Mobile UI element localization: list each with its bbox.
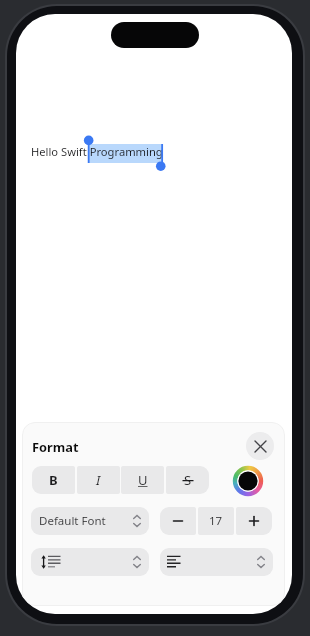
staticText: 17 (209, 513, 223, 529)
button[interactable]: 17 (198, 507, 234, 535)
staticText: I (96, 471, 101, 489)
button[interactable]: U (121, 466, 164, 494)
staticText: B (49, 471, 58, 489)
button[interactable] (246, 432, 274, 460)
button[interactable] (31, 548, 149, 576)
button[interactable]: Hello Swift Programming (31, 144, 163, 159)
staticText: U (138, 471, 148, 489)
staticText: Default Font (39, 513, 106, 529)
button[interactable] (160, 507, 196, 535)
button[interactable]: B (32, 466, 75, 494)
button[interactable] (160, 548, 273, 576)
button[interactable]: I (77, 466, 120, 494)
button[interactable]: Default Font (31, 507, 149, 535)
button[interactable] (233, 466, 263, 496)
staticText: S (184, 471, 192, 489)
button[interactable] (236, 507, 272, 535)
staticText: Format (32, 438, 79, 455)
button[interactable]: S (166, 466, 209, 494)
